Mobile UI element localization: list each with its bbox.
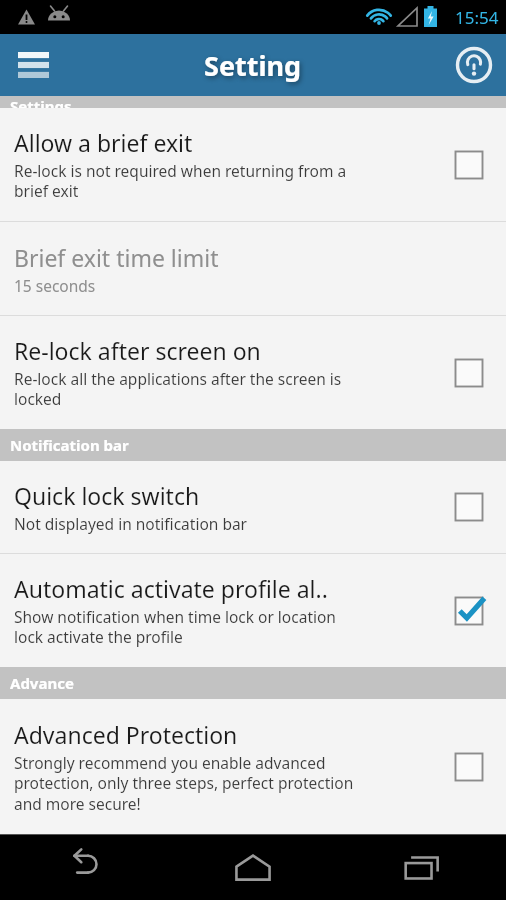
- button[interactable]: Automatic activate profile al..: [0, 554, 506, 667]
- staticText: Re-lock after screen on: [14, 335, 261, 366]
- staticText: Setting: [204, 47, 302, 84]
- staticText: 15 seconds: [14, 275, 96, 296]
- button[interactable]: Back: [0, 834, 168, 900]
- staticText: Notification bar: [10, 435, 129, 455]
- staticText: Advanced Protection: [14, 719, 238, 750]
- button[interactable]: Re-lock after screen on, not checked: [438, 316, 500, 429]
- staticText: Allow a brief exit: [14, 127, 193, 158]
- button[interactable]: Help: [447, 38, 501, 92]
- staticText: Strongly recommend you enable advanced p…: [14, 752, 354, 815]
- staticText: Re-lock all the applications after the s…: [14, 368, 342, 410]
- button[interactable]: Quick lock switch, not checked: [438, 461, 500, 553]
- button[interactable]: Advanced Protection, not checked: [438, 699, 500, 834]
- staticText: Automatic activate profile al..: [14, 573, 328, 604]
- staticText: Settings: [10, 96, 72, 108]
- button[interactable]: Recent apps: [337, 834, 506, 900]
- staticText: Brief exit time limit: [14, 242, 219, 273]
- staticText: Quick lock switch: [14, 480, 200, 511]
- button[interactable]: Automatic activate profile al.., checked: [438, 554, 500, 667]
- button[interactable]: Advanced Protection: [0, 699, 506, 834]
- staticText: Not displayed in notification bar: [14, 513, 248, 534]
- staticText: Show notification when time lock or loca…: [14, 606, 336, 648]
- staticText: Re-lock is not required when returning f…: [14, 160, 347, 202]
- staticText: 15:54: [455, 6, 499, 29]
- staticText: Advance: [10, 673, 74, 693]
- button[interactable]: Quick lock switch: [0, 461, 506, 553]
- button[interactable]: Allow a brief exit, not checked: [438, 108, 500, 221]
- button[interactable]: Home: [168, 834, 337, 900]
- button[interactable]: Re-lock after screen on: [0, 316, 506, 429]
- button[interactable]: Allow a brief exit: [0, 108, 506, 221]
- button[interactable]: Brief exit time limit: [0, 222, 506, 315]
- button[interactable]: Open navigation drawer: [6, 38, 60, 92]
